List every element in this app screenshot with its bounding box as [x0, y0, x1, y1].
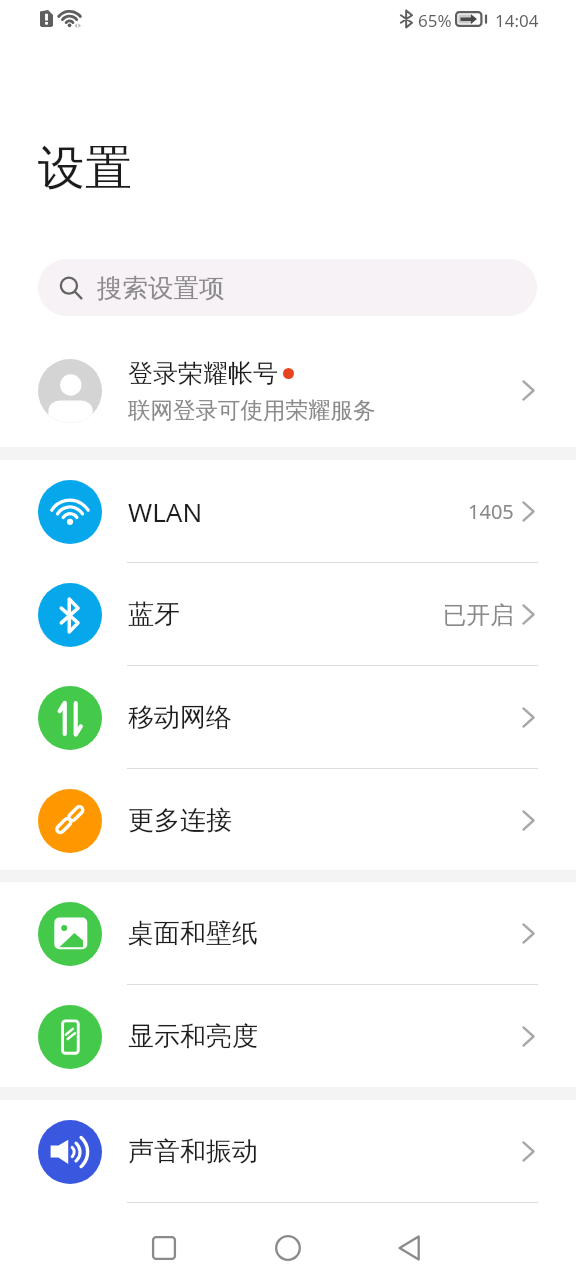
- staticText: 登录荣耀帐号: [128, 358, 278, 389]
- button[interactable]: 移动网络: [0, 666, 576, 769]
- staticText: 已开启: [443, 600, 514, 630]
- staticText: 蓝牙: [128, 598, 180, 631]
- button[interactable]: 搜索设置项: [38, 259, 537, 316]
- button[interactable]: 登录荣耀帐号: [0, 339, 576, 442]
- staticText: 1405: [468, 498, 514, 525]
- staticText: 设置: [38, 139, 132, 198]
- staticText: 14:04: [495, 9, 539, 32]
- button[interactable]: 蓝牙: [0, 563, 576, 666]
- button[interactable]: 更多连接: [0, 769, 576, 872]
- staticText: 声音和振动: [128, 1135, 258, 1168]
- button[interactable]: Home: [249, 1214, 327, 1280]
- staticText: WLAN: [128, 494, 203, 529]
- staticText: 桌面和壁纸: [128, 917, 258, 950]
- button[interactable]: 显示和亮度: [0, 985, 576, 1088]
- staticText: 搜索设置项: [97, 272, 225, 304]
- staticText: 移动网络: [128, 701, 232, 734]
- staticText: 更多连接: [128, 804, 232, 837]
- staticText: 65%: [418, 9, 452, 32]
- staticText: 联网登录可使用荣耀服务: [128, 396, 376, 424]
- button[interactable]: Recent apps: [125, 1214, 203, 1280]
- button[interactable]: 桌面和壁纸: [0, 882, 576, 985]
- button[interactable]: Back: [370, 1214, 448, 1280]
- staticText: 显示和亮度: [128, 1020, 258, 1053]
- button[interactable]: 声音和振动: [0, 1100, 576, 1203]
- button[interactable]: WLAN: [0, 460, 576, 563]
